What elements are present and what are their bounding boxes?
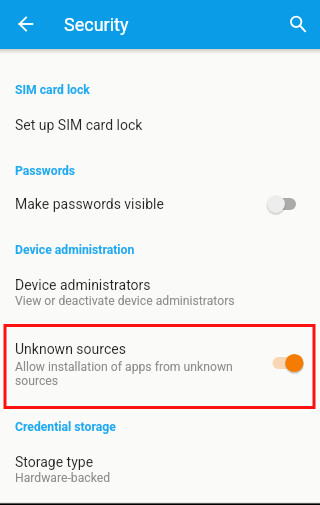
button[interactable]: Navigate up — [9, 6, 45, 42]
button[interactable]: Search — [282, 8, 316, 42]
staticText: Device administration — [15, 243, 135, 257]
button[interactable]: Device administrators — [0, 268, 320, 313]
staticText: Allow installation of apps from unknown … — [15, 360, 247, 388]
staticText: Security — [64, 14, 129, 35]
button[interactable]: Unknown sources — [0, 330, 320, 404]
staticText: Unknown sources — [15, 341, 126, 357]
button[interactable]: Set up SIM card lock — [0, 107, 320, 134]
button[interactable]: Make passwords visible — [0, 187, 320, 217]
staticText: SIM card lock — [15, 83, 90, 97]
button[interactable]: Encrypt phone — [0, 24, 320, 54]
staticText: Passwords — [15, 164, 76, 178]
staticText: Make passwords visible — [15, 196, 164, 212]
staticText: Set up SIM card lock — [15, 117, 143, 133]
staticText: Credential storage — [15, 420, 116, 434]
button[interactable]: Storage type — [0, 446, 320, 492]
staticText: Encrypt phone — [15, 36, 105, 52]
staticText: Storage type — [15, 454, 94, 470]
staticText: Device administrators — [15, 277, 151, 293]
staticText: Hardware-backed — [15, 471, 315, 485]
staticText: View or deactivate device administrators — [15, 294, 315, 308]
